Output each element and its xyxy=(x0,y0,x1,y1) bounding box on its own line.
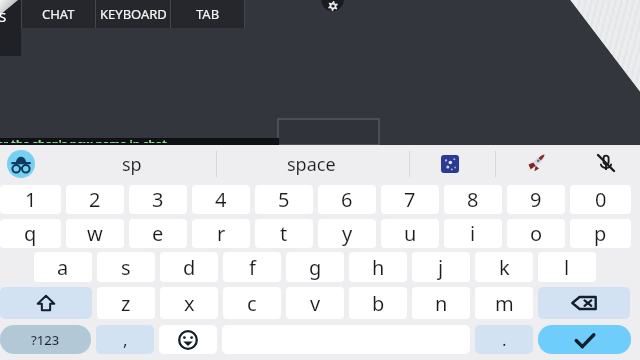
staticText: ?123 xyxy=(31,331,60,349)
staticText: r xyxy=(217,220,226,247)
button[interactable]: 6 xyxy=(318,185,376,214)
button[interactable]: f xyxy=(223,252,281,282)
staticText: TAB xyxy=(196,5,220,23)
staticText: CHAT xyxy=(42,5,75,23)
button[interactable]: 4 xyxy=(192,185,250,214)
button[interactable]: n xyxy=(412,287,470,319)
staticText: b xyxy=(372,290,385,317)
button[interactable]: d xyxy=(160,252,218,282)
staticText: q xyxy=(24,220,37,247)
staticText: i xyxy=(470,220,476,247)
button[interactable]: m xyxy=(475,287,533,319)
staticText: KEYBOARD xyxy=(100,5,167,23)
button[interactable]: 0 xyxy=(570,185,631,214)
button[interactable]: Milky way emoji xyxy=(441,155,459,173)
button[interactable]: Rocket emoji xyxy=(526,152,547,173)
button[interactable]: p xyxy=(570,219,631,248)
button[interactable]: 3 xyxy=(129,185,187,214)
button[interactable]: l xyxy=(538,252,596,282)
button[interactable]: 9 xyxy=(507,185,565,214)
staticText: d xyxy=(183,254,196,281)
button[interactable]: 2 xyxy=(66,185,124,214)
button[interactable]: y xyxy=(318,219,376,248)
staticText: 5 xyxy=(278,186,290,213)
button[interactable]: 1 xyxy=(0,185,61,214)
staticText: k xyxy=(499,254,510,281)
staticText: p xyxy=(594,220,607,247)
button[interactable]: h xyxy=(349,252,407,282)
button[interactable]: Enter xyxy=(538,325,631,354)
staticText: n xyxy=(435,290,448,317)
staticText: 1 xyxy=(25,186,37,213)
button[interactable]: Stats xyxy=(0,0,21,56)
staticText: v xyxy=(310,290,321,317)
button[interactable]: i xyxy=(444,219,502,248)
button[interactable]: j xyxy=(412,252,470,282)
button[interactable]: q xyxy=(0,219,61,248)
button[interactable]: Voice input disabled xyxy=(596,153,616,173)
button[interactable]: Emoji xyxy=(159,325,217,354)
button[interactable]: 7 xyxy=(381,185,439,214)
button[interactable]: space xyxy=(261,145,361,183)
button[interactable]: TAB xyxy=(171,0,244,28)
button[interactable]: 8 xyxy=(444,185,502,214)
staticText: h xyxy=(372,254,385,281)
button[interactable]: z xyxy=(97,287,155,319)
button[interactable]: c xyxy=(223,287,281,319)
button[interactable]: Incognito mode xyxy=(7,150,35,178)
staticText: 2 xyxy=(89,186,101,213)
staticText: j xyxy=(438,254,444,281)
button[interactable]: v xyxy=(286,287,344,319)
staticText: , xyxy=(123,328,128,351)
staticText: x xyxy=(184,290,195,317)
button[interactable]: CHAT xyxy=(22,0,95,28)
button[interactable]: r xyxy=(192,219,250,248)
staticText: y xyxy=(342,220,353,247)
staticText: s xyxy=(121,254,131,281)
staticText: m xyxy=(495,290,514,317)
staticText: c xyxy=(247,290,257,317)
staticText: g xyxy=(309,254,322,281)
button[interactable]: KEYBOARD xyxy=(96,0,170,28)
staticText: l xyxy=(564,254,570,281)
staticText: S xyxy=(0,8,7,26)
staticText: 8 xyxy=(467,186,479,213)
button[interactable]: b xyxy=(349,287,407,319)
button[interactable]: 5 xyxy=(255,185,313,214)
button[interactable]: Settings xyxy=(321,0,344,11)
staticText: sp xyxy=(122,152,142,177)
staticText: a xyxy=(57,254,69,281)
staticText: ter the shop's new name in chat xyxy=(0,138,167,143)
button[interactable]: x xyxy=(160,287,218,319)
staticText: z xyxy=(121,290,131,317)
staticText: 7 xyxy=(404,186,416,213)
button[interactable]: u xyxy=(381,219,439,248)
staticText: u xyxy=(404,220,417,247)
button[interactable]: k xyxy=(475,252,533,282)
button[interactable]: g xyxy=(286,252,344,282)
button[interactable]: t xyxy=(255,219,313,248)
staticText: 3 xyxy=(152,186,164,213)
staticText: t xyxy=(280,220,288,247)
button[interactable]: Comma xyxy=(96,325,154,354)
button[interactable]: Symbols xyxy=(0,325,91,354)
staticText: 4 xyxy=(215,186,227,213)
staticText: w xyxy=(87,220,103,247)
button[interactable]: Backspace xyxy=(538,287,630,319)
button[interactable]: a xyxy=(34,252,92,282)
staticText: space xyxy=(287,152,336,177)
button[interactable]: Period xyxy=(475,325,533,354)
button[interactable]: Shift xyxy=(0,287,92,319)
staticText: . xyxy=(502,328,507,351)
staticText: o xyxy=(530,220,543,247)
staticText: 9 xyxy=(530,186,542,213)
button[interactable]: s xyxy=(97,252,155,282)
staticText: e xyxy=(152,220,164,247)
button[interactable]: e xyxy=(129,219,187,248)
staticText: 6 xyxy=(341,186,353,213)
button[interactable]: sp xyxy=(82,145,182,183)
button[interactable]: w xyxy=(66,219,124,248)
staticText: 0 xyxy=(595,186,607,213)
button[interactable]: o xyxy=(507,219,565,248)
